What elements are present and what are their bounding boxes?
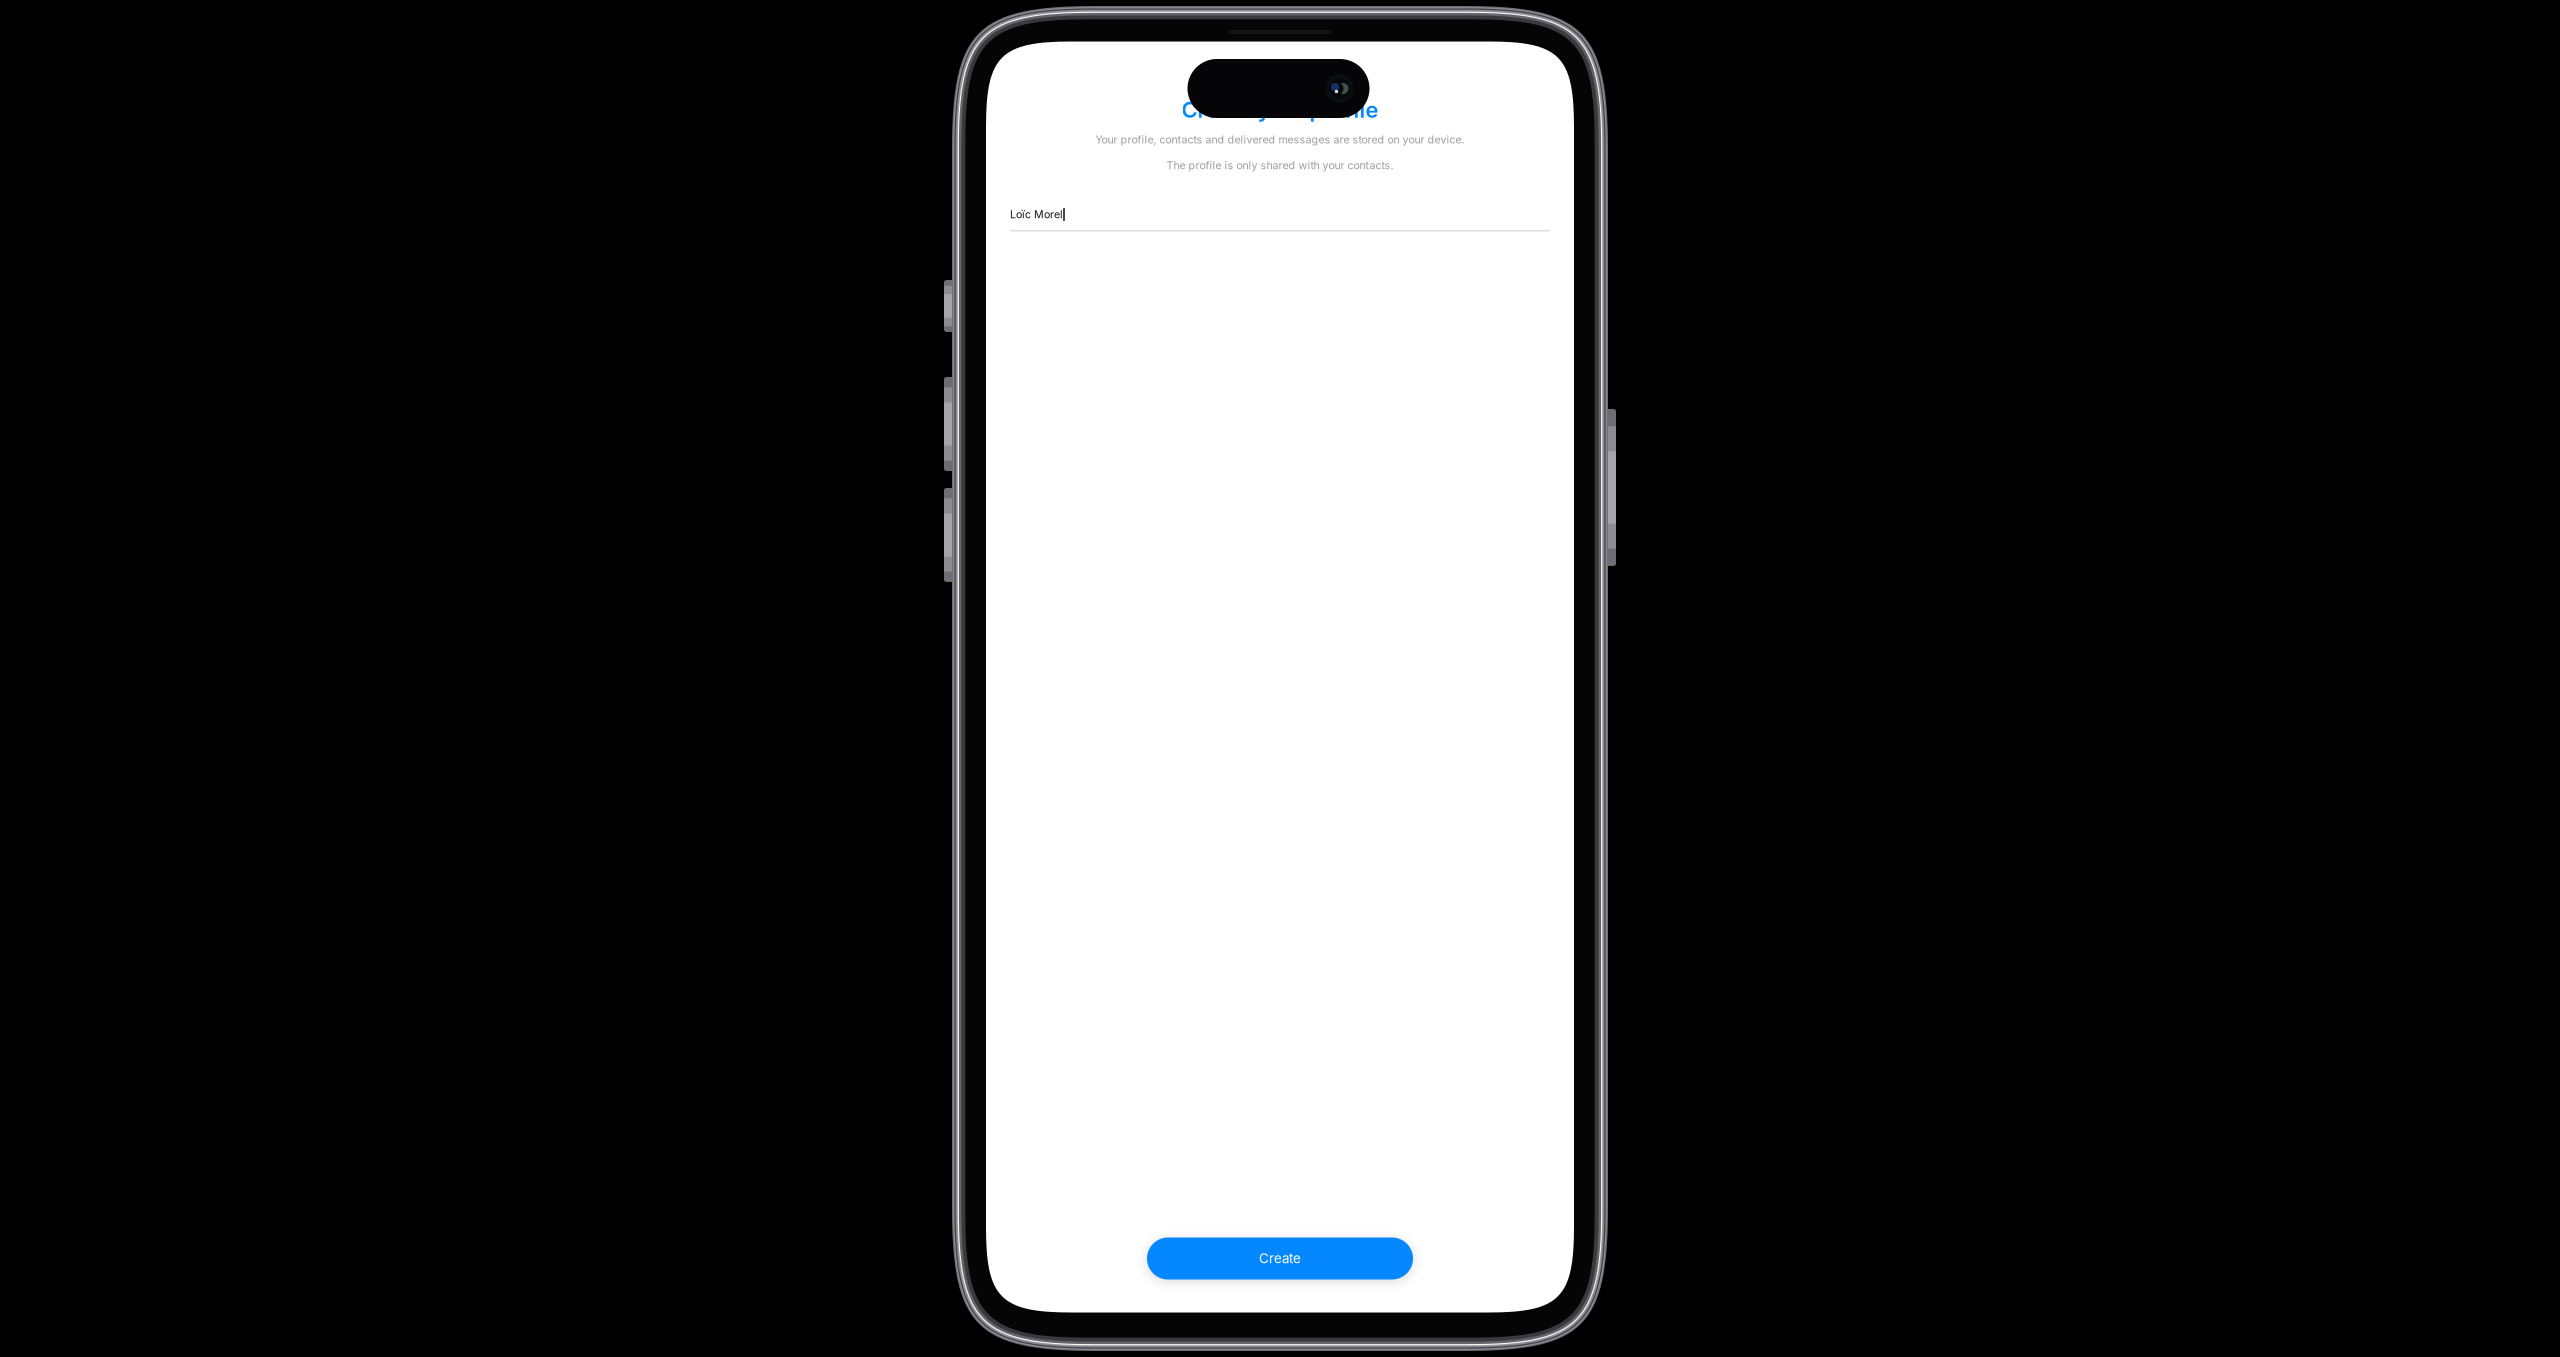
staticText: Create bbox=[1259, 1250, 1301, 1266]
button[interactable]: Create bbox=[1147, 1237, 1413, 1279]
staticText: Loïc Morel bbox=[1010, 208, 1063, 221]
staticText: The profile is only shared with your con… bbox=[1166, 159, 1393, 172]
staticText: Create your profile bbox=[1181, 96, 1378, 123]
button[interactable]: Profile name bbox=[986, 208, 1574, 231]
staticText: Your profile, contacts and delivered mes… bbox=[1095, 133, 1464, 146]
